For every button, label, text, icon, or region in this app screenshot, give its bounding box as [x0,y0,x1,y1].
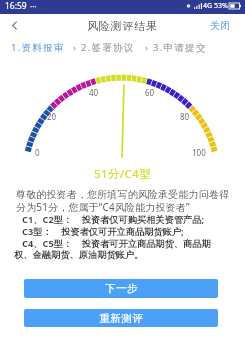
staticText: 20 [47,111,57,122]
staticText: C3型： 投资者仅可开立商品期货账户; [22,225,184,238]
staticText: 53% [214,1,228,11]
button[interactable]: 重新测评 [24,309,218,327]
staticText: 16:59 [5,0,27,12]
staticText: 100 [192,147,206,158]
staticText: 2.签署协议 [81,41,135,53]
staticText: 尊敬的投资者，您所填写的风险承受能力问卷得 [16,188,230,201]
staticText: C1、C2型： 投资者仅可购买相关资管产品; [22,213,205,226]
staticText: 权、金融期货、原油期货账户。 [14,249,144,261]
staticText: 4G [203,1,213,11]
staticText: 1.资料报审 [11,41,65,53]
staticText: 51分/C4型 [94,166,152,182]
staticText: 关闭 [210,19,231,32]
staticText: › [73,41,76,53]
staticText: 下一步 [105,282,138,295]
staticText: 80 [180,111,190,122]
staticText: › [145,41,148,53]
staticText: C4、C5型： 投资者可开立商品期货、商品期 [22,237,211,250]
staticText: 60 [145,87,155,98]
button[interactable]: Back [0,15,28,36]
staticText: 风险测评结果 [87,19,158,33]
button[interactable]: 关闭 [201,15,245,36]
staticText: 40 [89,87,99,98]
staticText: 重新测评 [99,312,143,325]
staticText: ··· [30,1,37,12]
staticText: 分为51分，您属于“C4风险能力投资者” [16,200,190,214]
button[interactable]: 下一步 [24,279,218,298]
staticText: 0 [35,147,40,158]
staticText: 3.申请提交 [153,41,207,53]
